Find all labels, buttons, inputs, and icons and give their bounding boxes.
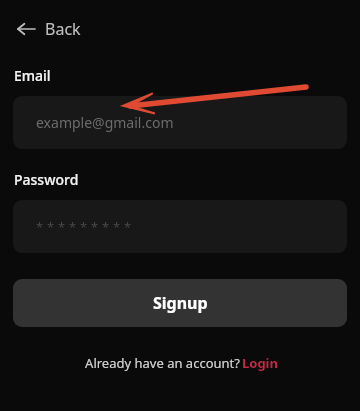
staticText: Back [45,18,81,40]
staticText: * [69,218,77,236]
staticText: Password [14,170,79,189]
staticText: * [58,218,66,236]
button[interactable]: Signup [13,279,347,327]
staticText: Email [14,66,51,85]
button[interactable]: Login [242,354,278,372]
staticText: * [80,218,88,236]
staticText: * [124,218,132,236]
staticText: * [91,218,99,236]
staticText: example@gmail.com [36,113,174,132]
staticText: * [47,218,55,236]
button[interactable]: Back [10,14,87,44]
staticText: * [102,218,110,236]
staticText: Signup [153,292,208,314]
staticText: * [113,218,121,236]
button[interactable]: * [13,200,347,253]
staticText: * [36,218,44,236]
button[interactable]: example@gmail.com [13,96,347,149]
staticText: Login [242,354,278,372]
staticText: Already have an account? [83,354,242,372]
